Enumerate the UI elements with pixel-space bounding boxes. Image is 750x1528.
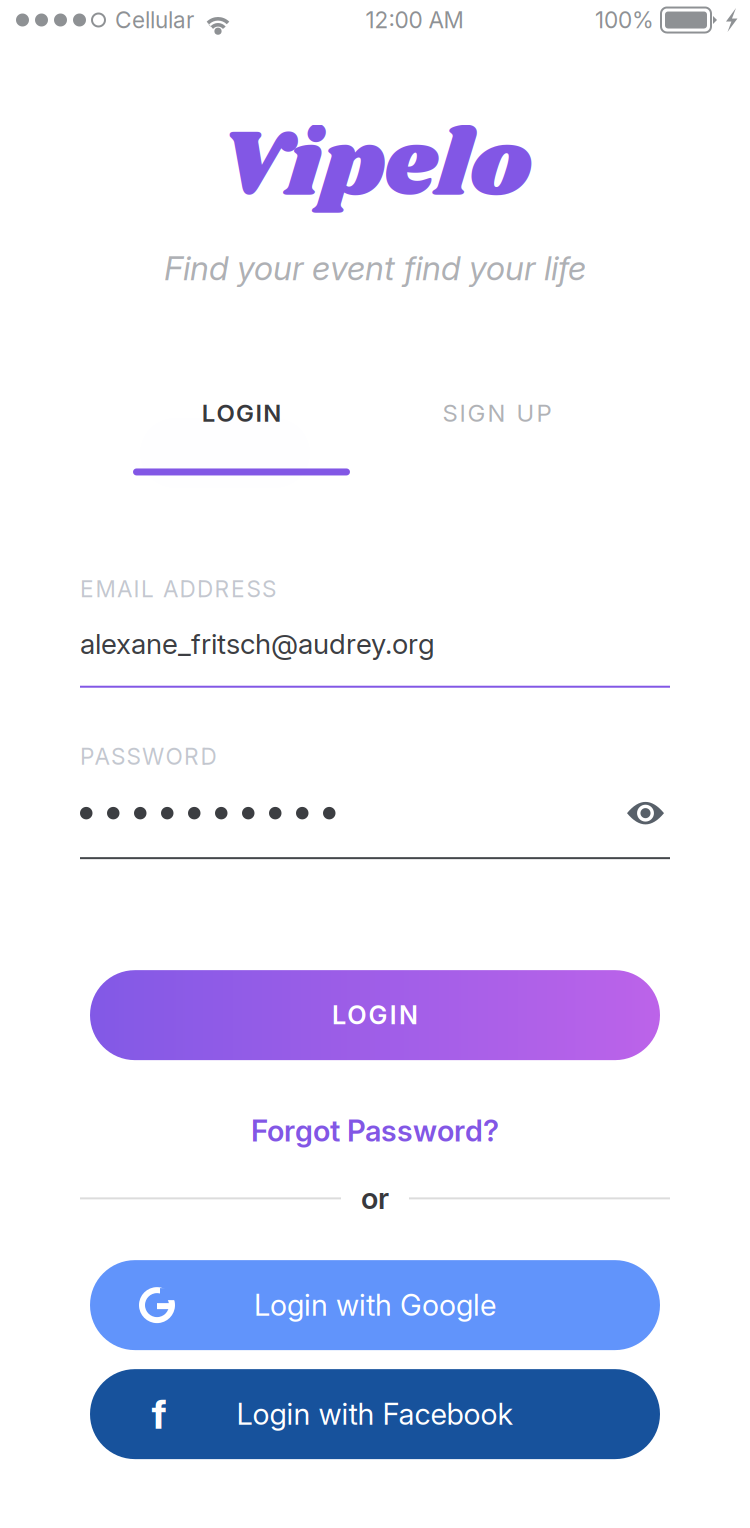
staticText: or — [361, 1181, 389, 1216]
button[interactable]: LOGIN — [90, 970, 660, 1060]
staticText: LOGIN — [202, 398, 281, 427]
staticText: 100% — [595, 6, 654, 34]
button[interactable]: Forgot Password? — [231, 1105, 519, 1157]
button[interactable]: Login with Google — [90, 1260, 660, 1350]
staticText: PASSWORD — [80, 743, 216, 770]
staticText: Vipelo — [218, 99, 531, 235]
staticText: alexane_fritsch@audrey.org — [80, 627, 435, 661]
staticText: 12:00 AM — [365, 6, 463, 34]
staticText: EMAIL ADDRESS — [80, 575, 276, 603]
staticText: Forgot Password? — [251, 1113, 499, 1149]
button[interactable]: f — [90, 1369, 660, 1459]
button[interactable]: SIGN UP — [393, 366, 601, 541]
staticText: Login with Facebook — [236, 1396, 513, 1432]
button[interactable]: LOGIN — [90, 366, 393, 541]
staticText: Find your event find your life — [164, 248, 586, 288]
staticText: Login with Google — [254, 1287, 496, 1323]
staticText: Cellular — [115, 6, 194, 34]
staticText: f — [151, 1390, 166, 1438]
staticText: LOGIN — [332, 1000, 418, 1030]
button[interactable]: Show password — [621, 796, 670, 830]
staticText: SIGN UP — [442, 398, 551, 427]
